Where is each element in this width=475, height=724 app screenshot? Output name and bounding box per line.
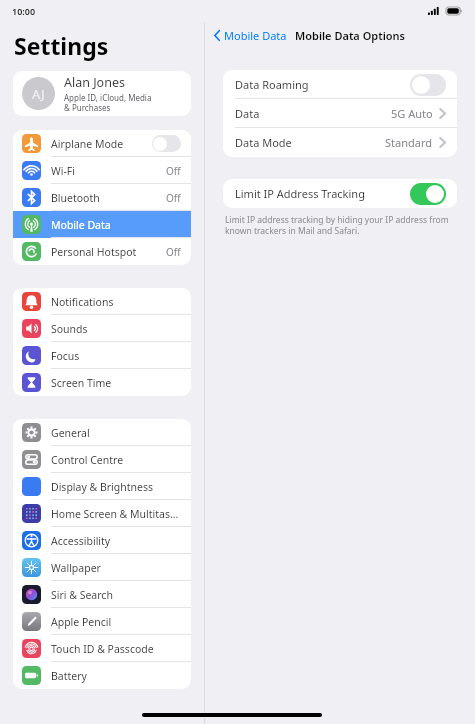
- staticText: Personal Hotspot: [51, 245, 137, 259]
- staticText: Limit IP address tracking by hiding your…: [225, 214, 455, 236]
- button[interactable]: Home Screen & Multitas…: [13, 500, 191, 527]
- staticText: 5G Auto: [391, 106, 433, 121]
- button[interactable]: Mobile Data: [214, 28, 291, 43]
- button[interactable]: AJ: [13, 71, 191, 116]
- button[interactable]: Sounds: [13, 315, 191, 342]
- button[interactable]: Data Mode: [223, 128, 457, 157]
- staticText: Control Centre: [51, 453, 124, 467]
- button[interactable]: Control Centre: [13, 446, 191, 473]
- staticText: Bluetooth: [51, 191, 100, 205]
- staticText: Sounds: [51, 322, 88, 336]
- staticText: 10:00: [12, 5, 36, 17]
- button[interactable]: Data Roaming: [223, 70, 457, 99]
- button[interactable]: Notifications: [13, 288, 191, 315]
- staticText: Airplane Mode: [51, 137, 124, 151]
- staticText: Standard: [385, 135, 433, 150]
- button[interactable]: Apple Pencil: [13, 608, 191, 635]
- staticText: Wallpaper: [51, 561, 101, 575]
- staticText: Screen Time: [51, 376, 112, 390]
- staticText: Apple Pencil: [51, 615, 112, 629]
- button[interactable]: Wallpaper: [13, 554, 191, 581]
- staticText: Focus: [51, 349, 80, 363]
- staticText: Mobile Data: [224, 28, 287, 43]
- staticText: Accessibility: [51, 534, 111, 548]
- staticText: General: [51, 426, 90, 440]
- button[interactable]: Siri & Search: [13, 581, 191, 608]
- staticText: Data Mode: [235, 135, 385, 150]
- button[interactable]: Screen Time: [13, 369, 191, 396]
- staticText: Mobile Data: [51, 218, 111, 232]
- staticText: Settings: [14, 30, 109, 61]
- button[interactable]: Accessibility: [13, 527, 191, 554]
- button[interactable]: Limit IP Address Tracking: [223, 179, 457, 208]
- staticText: Data: [235, 106, 391, 121]
- staticText: AJ: [32, 85, 45, 103]
- button[interactable]: Airplane Mode off: [152, 135, 181, 152]
- staticText: Off: [166, 191, 181, 205]
- button[interactable]: Display & Brightness: [13, 473, 191, 500]
- button[interactable]: Toggle off: [410, 74, 446, 96]
- staticText: Data Roaming: [235, 77, 410, 92]
- staticText: Alan Jones: [64, 74, 125, 91]
- staticText: Mobile Data Options: [295, 28, 406, 43]
- staticText: Touch ID & Passcode: [51, 642, 154, 656]
- button[interactable]: Data: [223, 99, 457, 128]
- staticText: Apple ID, iCloud, Media & Purchases: [64, 92, 152, 113]
- staticText: Display & Brightness: [51, 480, 154, 494]
- staticText: Off: [166, 164, 181, 178]
- button[interactable]: Battery: [13, 662, 191, 689]
- button[interactable]: Toggle on: [410, 183, 446, 205]
- button[interactable]: Bluetooth: [13, 184, 191, 211]
- button[interactable]: Focus: [13, 342, 191, 369]
- staticText: Limit IP Address Tracking: [235, 186, 410, 201]
- staticText: Notifications: [51, 295, 114, 309]
- staticText: Home Screen & Multitas…: [51, 507, 179, 521]
- button[interactable]: Airplane Mode: [13, 130, 191, 157]
- staticText: Off: [166, 245, 181, 259]
- staticText: Battery: [51, 669, 87, 683]
- staticText: Wi-Fi: [51, 164, 76, 178]
- button[interactable]: Touch ID & Passcode: [13, 635, 191, 662]
- button[interactable]: Personal Hotspot: [13, 238, 191, 265]
- staticText: Siri & Search: [51, 588, 113, 602]
- button[interactable]: General: [13, 419, 191, 446]
- button[interactable]: Mobile Data: [13, 211, 191, 238]
- button[interactable]: Wi-Fi: [13, 157, 191, 184]
